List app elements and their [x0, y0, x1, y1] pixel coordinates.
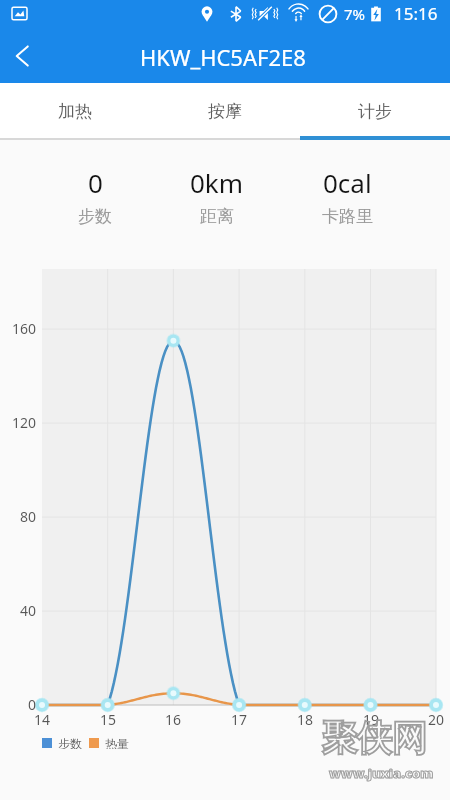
staticText: 160: [12, 319, 37, 338]
button[interactable]: 按摩: [150, 83, 300, 140]
staticText: 19: [363, 710, 380, 729]
staticText: 0km: [190, 165, 244, 200]
staticText: 加热: [58, 101, 92, 122]
staticText: 热量: [105, 736, 129, 749]
staticText: 15:16: [394, 2, 438, 25]
staticText: 18: [297, 710, 314, 729]
staticText: www.juxia.com: [329, 764, 434, 782]
staticText: HKW_HC5AF2E8: [140, 42, 306, 72]
staticText: 卡路里: [322, 206, 373, 227]
button[interactable]: 加热: [0, 83, 150, 140]
staticText: 0: [28, 695, 37, 714]
staticText: 40: [20, 601, 37, 620]
staticText: 按摩: [208, 101, 242, 122]
staticText: 0cal: [323, 165, 372, 200]
button[interactable]: 计步: [300, 83, 450, 140]
staticText: 聚侠网: [322, 716, 427, 760]
staticText: 16: [165, 710, 182, 729]
staticText: 7%: [344, 4, 366, 24]
staticText: 14: [34, 710, 51, 729]
staticText: 0: [88, 165, 103, 200]
staticText: 20: [428, 710, 445, 729]
staticText: 15: [100, 710, 117, 729]
staticText: 120: [12, 413, 37, 432]
staticText: 步数: [78, 206, 112, 227]
staticText: 步数: [58, 736, 82, 749]
staticText: 距离: [200, 206, 234, 227]
button[interactable]: Back: [0, 33, 44, 77]
staticText: 计步: [358, 101, 392, 122]
staticText: 80: [20, 507, 37, 526]
staticText: 17: [231, 710, 248, 729]
